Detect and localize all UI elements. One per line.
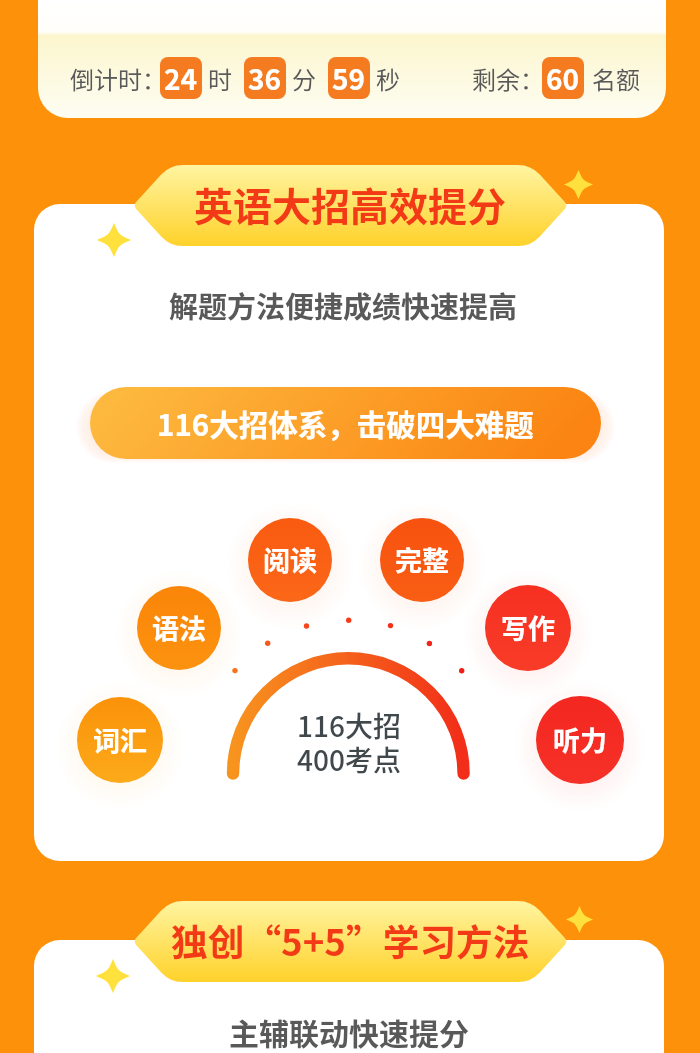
staticText: 60 xyxy=(546,58,580,99)
staticText: 词汇 xyxy=(93,720,147,759)
staticText: 时 xyxy=(208,61,232,96)
button[interactable]: 116大招体系，击破四大难题 xyxy=(90,387,601,459)
button[interactable]: 词汇 xyxy=(77,697,163,783)
staticText: 剩余： xyxy=(472,61,544,96)
staticText: 36 xyxy=(248,58,282,99)
button[interactable]: 语法 xyxy=(137,586,221,670)
staticText: 59 xyxy=(332,58,366,99)
staticText: 116大招体系，击破四大难题 xyxy=(157,402,534,445)
button[interactable]: 独创“5+5”学习方法 xyxy=(133,901,568,982)
staticText: 名额 xyxy=(592,61,640,96)
staticText: 独创“5+5”学习方法 xyxy=(171,913,530,966)
button[interactable]: 阅读 xyxy=(248,518,332,602)
staticText: 解题方法便捷成绩快速提高 xyxy=(169,284,518,326)
staticText: 倒计时： xyxy=(70,61,166,96)
staticText: 阅读 xyxy=(263,540,317,579)
staticText: 主辅联动快速提分 xyxy=(229,1010,469,1053)
button[interactable]: 完整 xyxy=(380,518,464,602)
staticText: 116大招 400考点 xyxy=(297,705,401,779)
staticText: 写作 xyxy=(501,608,555,647)
button[interactable]: 听力 xyxy=(536,696,624,784)
staticText: 完整 xyxy=(395,540,449,579)
staticText: 秒 xyxy=(376,61,400,96)
button[interactable]: 写作 xyxy=(485,585,571,671)
staticText: 24 xyxy=(164,58,198,99)
staticText: 语法 xyxy=(152,608,206,647)
button[interactable]: 英语大招高效提分 xyxy=(133,165,568,246)
staticText: 听力 xyxy=(553,720,607,759)
staticText: 英语大招高效提分 xyxy=(194,176,507,232)
staticText: 分 xyxy=(292,61,316,96)
